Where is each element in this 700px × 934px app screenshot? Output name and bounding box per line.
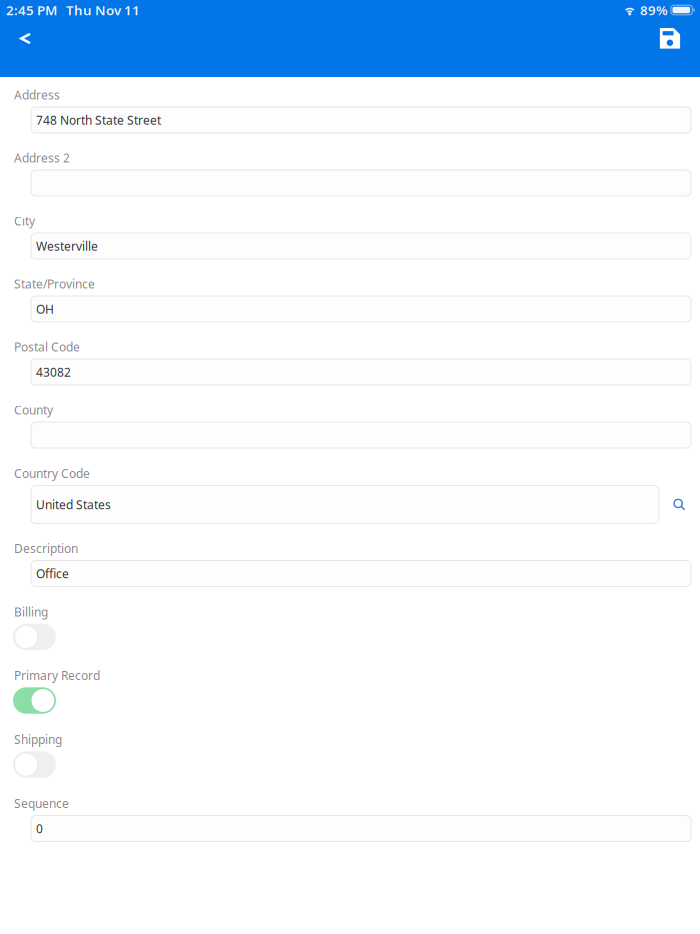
staticText: 2:45 PM xyxy=(6,1,57,19)
staticText: Office xyxy=(36,565,69,581)
button[interactable]: Primary Record xyxy=(13,687,56,714)
staticText: City xyxy=(14,213,35,229)
button[interactable] xyxy=(31,422,691,448)
button[interactable]: Save xyxy=(643,17,700,59)
button[interactable]: Westerville xyxy=(31,233,691,259)
staticText: United States xyxy=(36,496,111,512)
button[interactable]: Billing xyxy=(13,624,56,650)
staticText: Country Code xyxy=(14,465,90,481)
staticText: Primary Record xyxy=(14,667,100,683)
staticText: Westerville xyxy=(36,238,98,254)
button[interactable]: United States xyxy=(31,485,659,523)
button[interactable]: 0 xyxy=(31,815,691,841)
button[interactable] xyxy=(31,170,691,196)
staticText: Postal Code xyxy=(14,339,80,355)
button[interactable]: Office xyxy=(31,560,691,586)
staticText: Description xyxy=(14,540,78,556)
staticText: 748 North State Street xyxy=(36,112,161,128)
button[interactable]: Look up country code xyxy=(659,485,691,523)
staticText: 89% xyxy=(640,1,668,19)
button[interactable]: Back xyxy=(0,17,47,59)
button[interactable]: 748 North State Street xyxy=(31,107,691,133)
staticText: Sequence xyxy=(14,795,69,811)
staticText: Shipping xyxy=(14,731,62,747)
staticText: Address 2 xyxy=(14,150,70,166)
staticText: 0 xyxy=(36,820,43,836)
staticText: State/Province xyxy=(14,276,95,292)
button[interactable]: Shipping xyxy=(13,751,56,778)
button[interactable]: 43082 xyxy=(31,359,691,385)
staticText: Address xyxy=(14,87,60,103)
staticText: 43082 xyxy=(36,364,71,380)
staticText: County xyxy=(14,402,53,418)
staticText: Billing xyxy=(14,604,48,620)
staticText: OH xyxy=(36,301,54,317)
button[interactable]: OH xyxy=(31,296,691,322)
staticText: Thu Nov 11 xyxy=(66,1,140,19)
